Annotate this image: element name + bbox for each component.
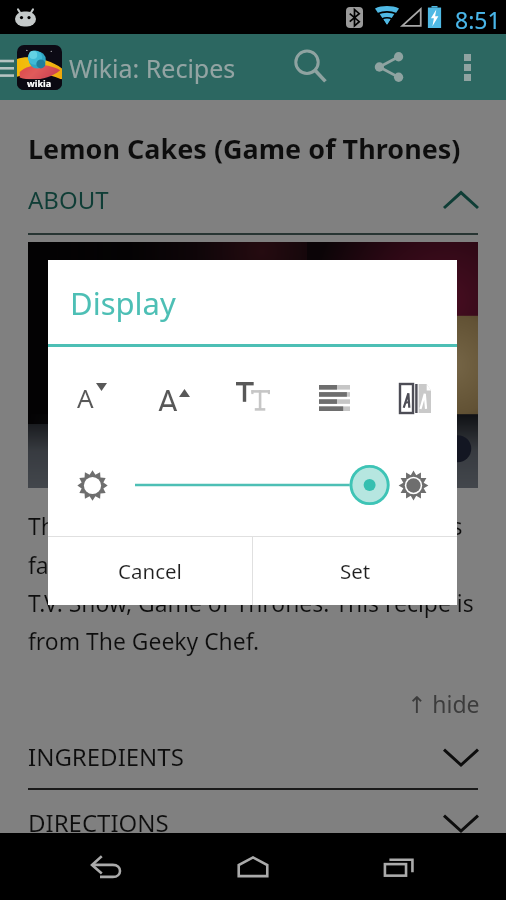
staticText: DIRECTIONS bbox=[28, 806, 169, 839]
staticText: INGREDIENTS bbox=[28, 740, 184, 773]
button[interactable]: Text alignment bbox=[300, 368, 368, 428]
button[interactable]: Brightness slider bbox=[128, 465, 388, 505]
button[interactable]: Low brightness bbox=[76, 469, 109, 502]
button[interactable]: ABOUT bbox=[28, 182, 478, 216]
button[interactable]: Font family bbox=[219, 367, 287, 427]
button[interactable]: Increase text size bbox=[139, 365, 207, 425]
staticText: Wikia: Recipes bbox=[69, 51, 236, 85]
staticText: ↑ hide bbox=[407, 688, 480, 719]
button[interactable]: Share bbox=[361, 34, 417, 100]
staticText: wikia bbox=[27, 77, 52, 89]
staticText: Lemon Cakes (Game of Thrones) bbox=[28, 130, 461, 167]
button[interactable]: High brightness bbox=[398, 470, 429, 501]
button[interactable]: More options bbox=[443, 34, 491, 100]
button[interactable]: Back bbox=[70, 842, 146, 892]
button[interactable]: ↑ hide bbox=[380, 686, 480, 720]
button[interactable]: Search bbox=[283, 34, 339, 100]
button[interactable]: Cancel bbox=[48, 537, 252, 605]
staticText: A bbox=[157, 379, 179, 411]
staticText: Set bbox=[340, 557, 371, 585]
button[interactable]: DIRECTIONS bbox=[28, 805, 478, 839]
button[interactable]: INGREDIENTS bbox=[28, 739, 478, 773]
button[interactable]: Recents bbox=[361, 842, 437, 892]
button[interactable]: Home bbox=[215, 842, 291, 892]
staticText: ABOUT bbox=[28, 183, 109, 216]
button[interactable]: Theme bbox=[381, 368, 449, 428]
staticText: 8:51 bbox=[455, 4, 501, 35]
staticText: Cancel bbox=[118, 557, 182, 585]
button[interactable]: Decrease text size bbox=[58, 366, 126, 426]
staticText: A bbox=[77, 380, 94, 412]
staticText: This is a recipe for Lemon Cakes, Sansa'… bbox=[28, 511, 486, 657]
button[interactable]: Set bbox=[253, 537, 457, 605]
staticText: Display bbox=[70, 282, 176, 324]
